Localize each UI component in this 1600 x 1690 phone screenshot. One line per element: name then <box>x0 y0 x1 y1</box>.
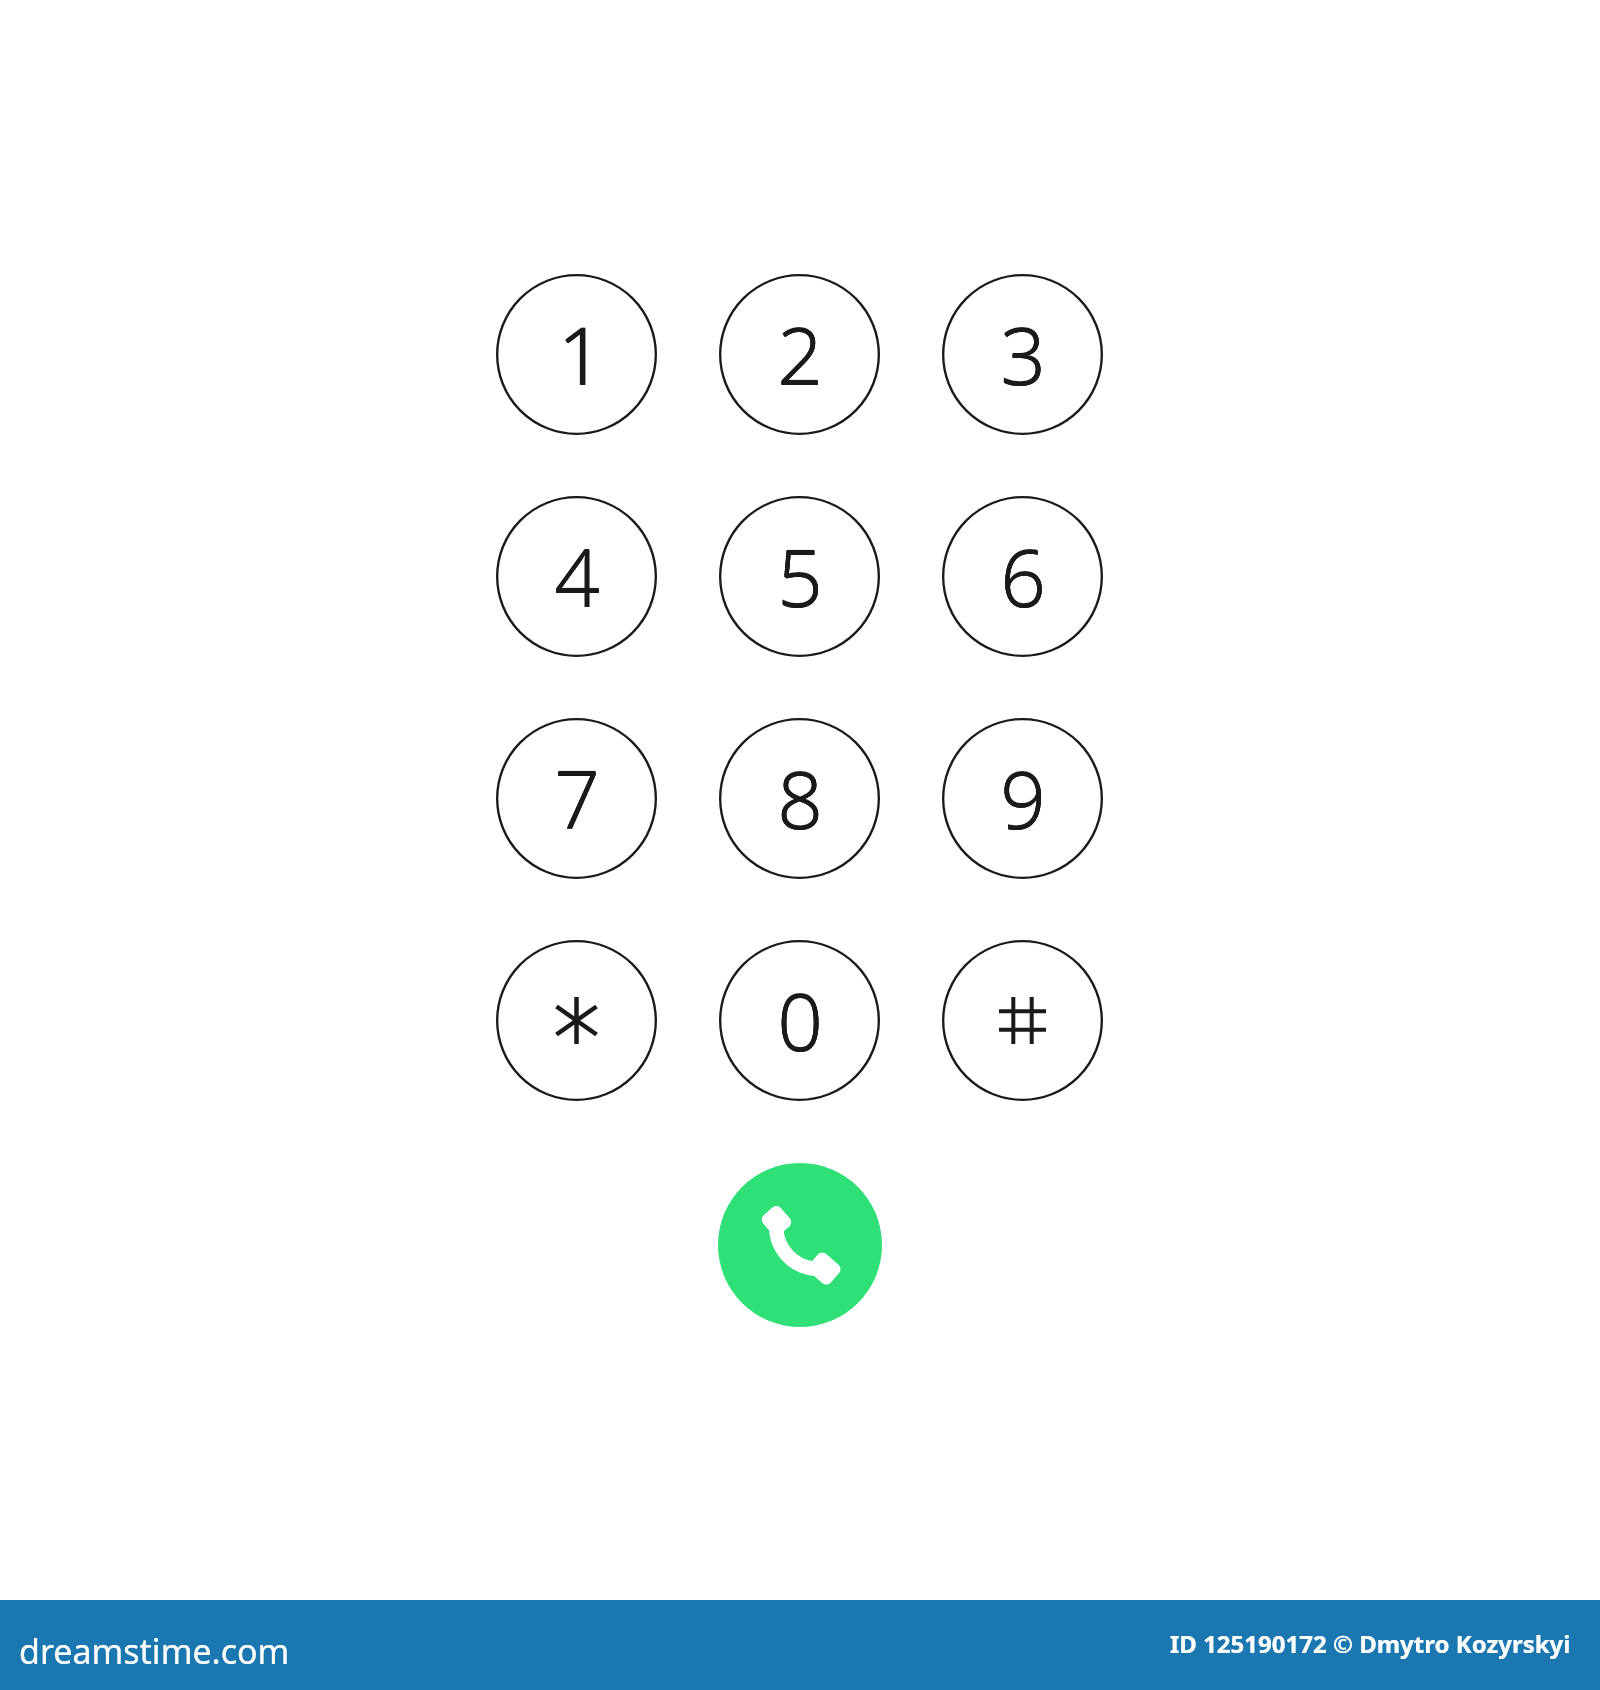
button[interactable]: Star <box>496 940 657 1101</box>
button[interactable]: 3 <box>942 274 1103 435</box>
staticText: 8 <box>777 742 823 851</box>
staticText: 8 <box>777 743 823 852</box>
staticText: 1 <box>558 299 604 408</box>
button[interactable]: Call <box>718 1163 882 1327</box>
staticText: 2 <box>777 299 823 408</box>
staticText: 2 <box>777 298 823 407</box>
staticText: 4 <box>554 521 600 630</box>
staticText: 3 <box>1000 299 1046 408</box>
button[interactable]: 7 <box>496 718 657 879</box>
button[interactable]: 4 <box>496 496 657 657</box>
staticText: 0 <box>777 964 823 1073</box>
button[interactable]: 2 <box>719 274 880 435</box>
staticText: 0 <box>777 965 823 1074</box>
button[interactable]: 8 <box>719 718 880 879</box>
staticText: 8 <box>777 743 823 852</box>
staticText: 3 <box>1000 299 1046 408</box>
staticText: 3 <box>1000 299 1046 408</box>
staticText: 5 <box>777 521 823 630</box>
staticText: 5 <box>777 521 823 630</box>
staticText: 4 <box>554 521 600 630</box>
staticText: ID 125190172 © Dmytro Kozyrskyi <box>1170 1627 1571 1660</box>
staticText: 1 <box>557 299 603 408</box>
button[interactable]: 5 <box>719 496 880 657</box>
button[interactable]: Pound <box>942 940 1103 1101</box>
staticText: 8 <box>777 743 823 852</box>
staticText: 6 <box>1000 521 1046 630</box>
button[interactable]: 1 <box>496 274 657 435</box>
staticText: 4 <box>554 521 600 630</box>
staticText: 4 <box>554 521 600 630</box>
staticText: 4 <box>554 520 600 629</box>
button[interactable]: 9 <box>942 718 1103 879</box>
staticText: 5 <box>777 521 823 630</box>
staticText: 1 <box>558 298 604 407</box>
staticText: 0 <box>777 965 823 1074</box>
staticText: 8 <box>777 743 823 852</box>
staticText: 9 <box>1000 742 1046 851</box>
staticText: 7 <box>554 743 600 852</box>
staticText: 6 <box>1000 521 1046 630</box>
staticText: 0 <box>777 965 823 1074</box>
button[interactable]: 6 <box>942 496 1103 657</box>
staticText: 1 <box>558 299 604 408</box>
staticText: 5 <box>777 520 823 629</box>
staticText: 3 <box>1000 298 1046 407</box>
staticText: 2 <box>777 299 823 408</box>
staticText: 0 <box>777 965 823 1074</box>
staticText: 9 <box>1000 743 1046 852</box>
staticText: 9 <box>1000 743 1046 852</box>
staticText: 7 <box>554 743 600 852</box>
staticText: 6 <box>1000 521 1046 630</box>
staticText: 7 <box>554 742 600 851</box>
staticText: 3 <box>1000 299 1046 408</box>
staticText: 6 <box>1000 521 1046 630</box>
staticText: 9 <box>1000 743 1046 852</box>
staticText: 5 <box>777 521 823 630</box>
staticText: 2 <box>777 299 823 408</box>
staticText: dreamstime.com <box>19 1628 290 1674</box>
staticText: 7 <box>554 743 600 852</box>
button[interactable]: 0 <box>719 940 880 1101</box>
staticText: 7 <box>554 743 600 852</box>
staticText: 1 <box>558 299 604 408</box>
staticText: 2 <box>777 299 823 408</box>
staticText: 6 <box>1000 520 1046 629</box>
staticText: 9 <box>1000 743 1046 852</box>
